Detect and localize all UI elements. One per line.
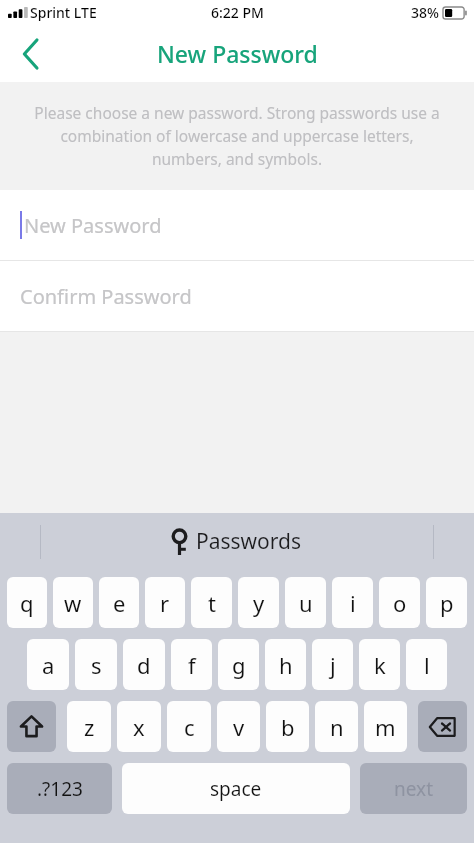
staticText: s xyxy=(91,650,102,680)
staticText: g xyxy=(232,650,246,680)
staticText: t xyxy=(208,588,216,618)
button[interactable]: w xyxy=(53,577,93,628)
button[interactable]: a xyxy=(27,639,69,690)
button[interactable]: u xyxy=(285,577,326,628)
button[interactable]: New Password xyxy=(0,190,474,260)
button[interactable]: Passwords xyxy=(0,513,474,570)
button[interactable]: s xyxy=(75,639,117,690)
staticText: space xyxy=(210,776,262,802)
button[interactable]: x xyxy=(117,701,161,752)
staticText: Confirm Password xyxy=(20,283,192,310)
staticText: q xyxy=(20,588,34,618)
button[interactable]: e xyxy=(99,577,139,628)
staticText: k xyxy=(374,650,386,680)
button[interactable]: m xyxy=(364,701,407,752)
button[interactable]: q xyxy=(7,577,47,628)
staticText: 38% xyxy=(411,3,439,22)
staticText: New Password xyxy=(157,38,318,69)
staticText: a xyxy=(42,650,55,680)
staticText: d xyxy=(137,650,151,680)
button[interactable]: i xyxy=(332,577,373,628)
staticText: next xyxy=(394,776,433,802)
staticText: j xyxy=(330,650,336,680)
button[interactable]: f xyxy=(171,639,212,690)
button[interactable]: d xyxy=(123,639,165,690)
staticText: o xyxy=(393,588,407,618)
staticText: i xyxy=(350,588,356,618)
button[interactable]: r xyxy=(145,577,185,628)
button[interactable]: Back xyxy=(8,31,54,77)
button[interactable]: o xyxy=(379,577,420,628)
staticText: z xyxy=(84,712,95,742)
button[interactable]: z xyxy=(67,701,111,752)
staticText: c xyxy=(184,712,195,742)
button[interactable]: .?123 xyxy=(7,763,112,814)
staticText: l xyxy=(424,650,430,680)
staticText: 6:22 PM xyxy=(211,3,264,22)
staticText: u xyxy=(299,588,313,618)
staticText: b xyxy=(281,712,295,742)
button[interactable]: next xyxy=(360,763,467,814)
staticText: p xyxy=(440,588,454,618)
button[interactable]: y xyxy=(238,577,279,628)
staticText: Please choose a new password. Strong pas… xyxy=(30,102,444,170)
button[interactable]: l xyxy=(406,639,447,690)
staticText: y xyxy=(253,588,265,618)
button[interactable]: b xyxy=(266,701,309,752)
button[interactable]: n xyxy=(315,701,358,752)
button[interactable]: g xyxy=(218,639,259,690)
staticText: m xyxy=(375,712,396,742)
staticText: Passwords xyxy=(196,527,302,556)
staticText: f xyxy=(188,650,196,680)
button[interactable]: Backspace xyxy=(418,701,467,752)
staticText: New Password xyxy=(24,212,162,239)
staticText: w xyxy=(64,588,82,618)
staticText: Sprint LTE xyxy=(30,3,97,22)
button[interactable]: t xyxy=(191,577,232,628)
button[interactable]: space xyxy=(122,763,350,814)
staticText: r xyxy=(160,588,170,618)
staticText: e xyxy=(113,588,126,618)
staticText: h xyxy=(279,650,293,680)
staticText: n xyxy=(330,712,344,742)
button[interactable]: h xyxy=(265,639,306,690)
button[interactable]: j xyxy=(312,639,353,690)
button[interactable]: k xyxy=(359,639,400,690)
button[interactable]: v xyxy=(217,701,260,752)
button[interactable]: p xyxy=(426,577,467,628)
button[interactable]: Shift xyxy=(7,701,56,752)
staticText: .?123 xyxy=(37,776,83,802)
staticText: v xyxy=(233,712,245,742)
staticText: x xyxy=(133,712,145,742)
button[interactable]: Confirm Password xyxy=(0,261,474,331)
button[interactable]: c xyxy=(167,701,211,752)
